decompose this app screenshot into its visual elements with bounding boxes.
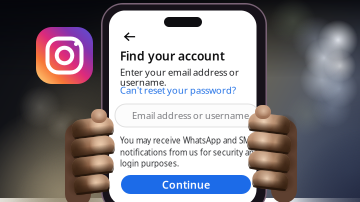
button[interactable]: Continue bbox=[121, 175, 251, 194]
staticText: Can't reset your password? bbox=[120, 84, 236, 96]
staticText: login purposes. bbox=[120, 158, 179, 169]
button[interactable]: Can't reset your password? bbox=[120, 84, 236, 96]
staticText: notifications from us for security and bbox=[120, 147, 259, 158]
staticText: Continue bbox=[162, 177, 210, 192]
button[interactable]: Back bbox=[119, 29, 141, 45]
staticText: username. bbox=[120, 76, 167, 88]
staticText: Find your account bbox=[120, 48, 225, 64]
staticText: Enter your email address or bbox=[120, 66, 239, 78]
staticText: Email address or username bbox=[132, 109, 249, 122]
staticText: You may receive WhatsApp and SMS bbox=[120, 135, 254, 146]
